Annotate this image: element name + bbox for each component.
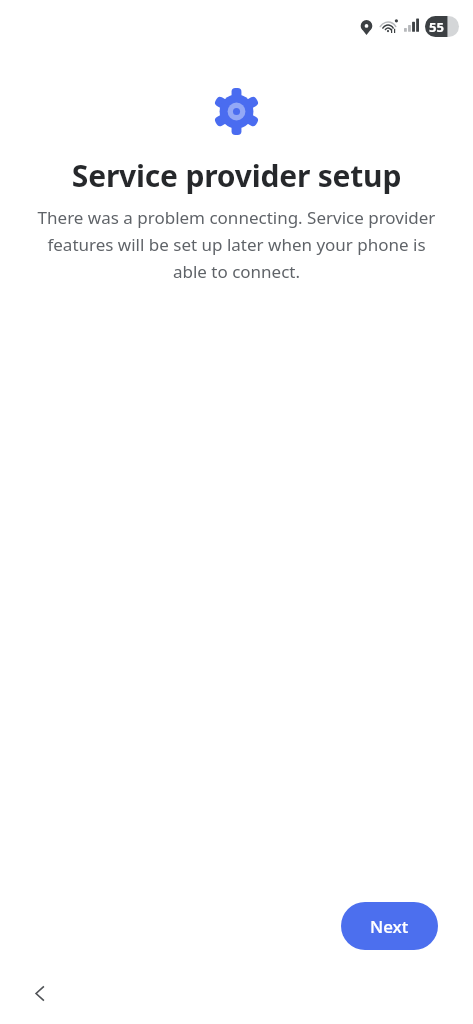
staticText: There was a problem connecting. Service …: [36, 206, 437, 283]
staticText: 55: [429, 18, 444, 36]
staticText: Service provider setup: [14, 155, 459, 196]
button[interactable]: Next: [341, 902, 438, 950]
button[interactable]: Back: [16, 969, 64, 1017]
staticText: Next: [370, 915, 409, 938]
